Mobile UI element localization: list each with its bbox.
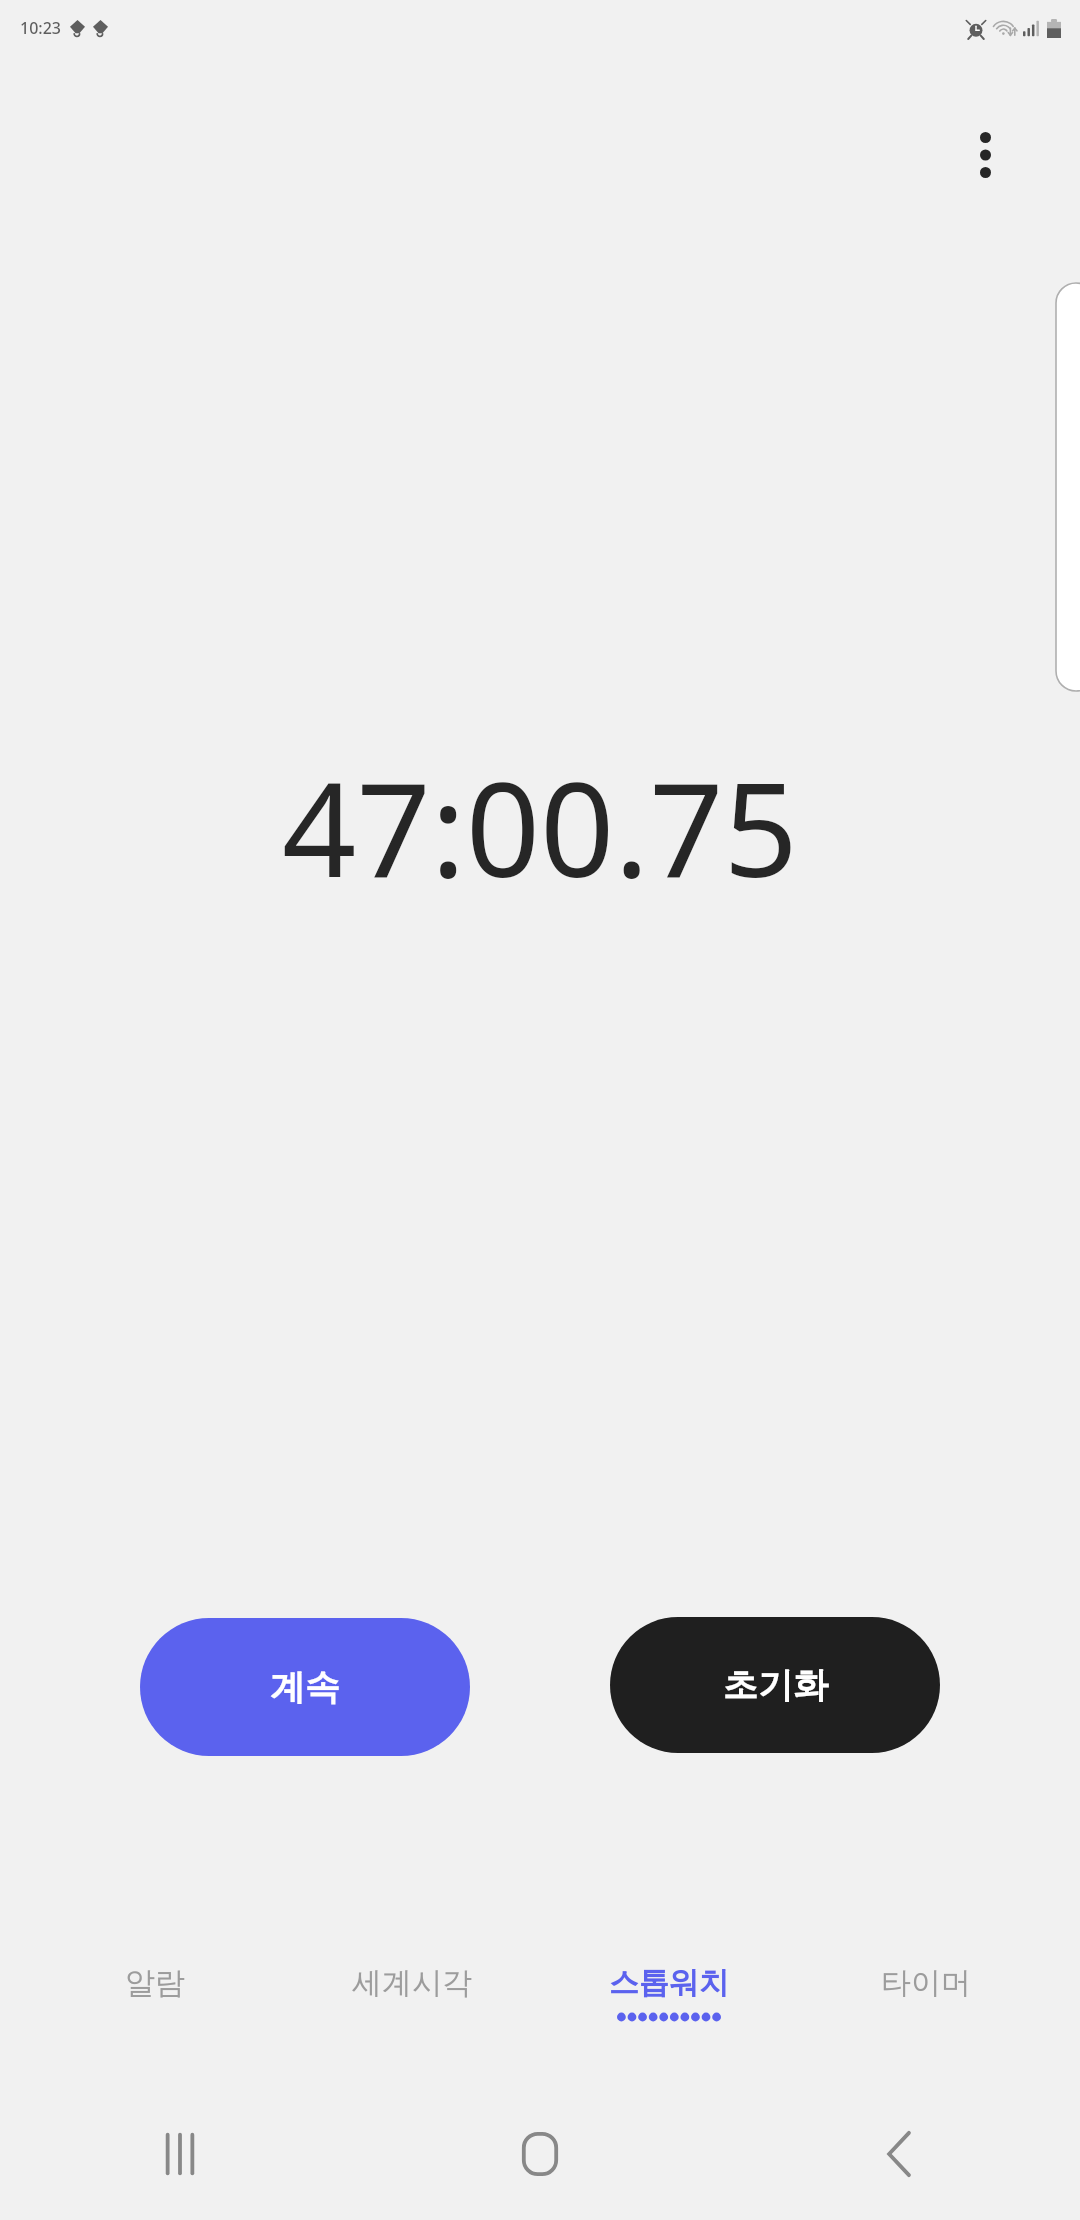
button[interactable]: Home xyxy=(360,2088,720,2220)
staticText: 알람 xyxy=(125,1964,185,2002)
staticText: 10:23 xyxy=(20,17,61,39)
staticText: 계속 xyxy=(270,1665,340,1709)
staticText: 스톱워치 xyxy=(609,1964,729,2002)
button[interactable]: 초기화 xyxy=(610,1617,940,1753)
staticText: 47:00.75 xyxy=(0,738,1080,915)
button[interactable]: Back xyxy=(720,2088,1080,2220)
button[interactable]: Recent apps xyxy=(0,2088,360,2220)
button[interactable]: 타이머 xyxy=(797,1930,1054,2080)
button[interactable]: 알람 xyxy=(26,1930,283,2080)
staticText: 초기화 xyxy=(723,1663,828,1707)
button[interactable]: 세계시각 xyxy=(283,1930,540,2080)
staticText: 세계시각 xyxy=(352,1964,472,2002)
staticText: 타이머 xyxy=(881,1964,971,2002)
button[interactable]: 계속 xyxy=(140,1618,470,1756)
button[interactable]: 스톱워치 xyxy=(540,1930,797,2080)
button[interactable]: More options xyxy=(950,110,1020,200)
